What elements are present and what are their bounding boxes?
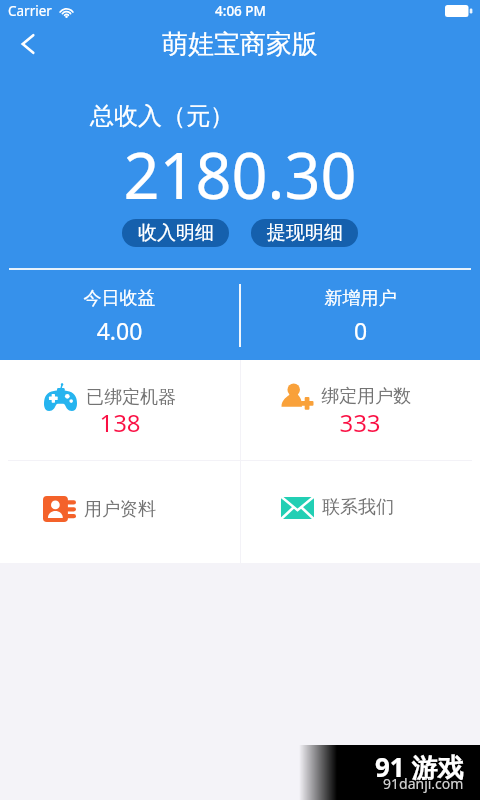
staticText: 4:06 PM — [215, 2, 266, 20]
staticText: 333 — [240, 406, 480, 439]
button[interactable]: 用户资料 — [0, 461, 240, 563]
staticText: 联系我们 — [322, 496, 394, 519]
button[interactable]: Back — [6, 22, 50, 66]
button[interactable]: 新增用户 — [241, 269, 480, 361]
staticText: 2180.30 — [0, 132, 480, 218]
staticText: 91 游戏 — [375, 749, 464, 785]
staticText: 用户资料 — [84, 498, 156, 521]
button[interactable]: 绑定用户数 — [240, 360, 480, 460]
staticText: 绑定用户数 — [321, 385, 411, 408]
staticText: 总收入（元） — [0, 101, 324, 131]
button[interactable]: 提现明细 — [251, 219, 358, 247]
staticText: 今日收益 — [0, 287, 239, 310]
staticText: Carrier — [8, 2, 52, 20]
staticText: 收入明细 — [138, 221, 214, 245]
staticText: 4.00 — [0, 315, 239, 346]
button[interactable]: 收入明细 — [122, 219, 229, 247]
staticText: 提现明细 — [267, 221, 343, 245]
staticText: 新增用户 — [241, 287, 480, 310]
button[interactable]: 联系我们 — [240, 461, 480, 563]
staticText: 0 — [241, 315, 480, 346]
staticText: 已绑定机器 — [86, 386, 176, 409]
staticText: 萌娃宝商家版 — [162, 28, 318, 61]
button[interactable]: 已绑定机器 — [0, 360, 240, 460]
staticText: 138 — [0, 406, 240, 439]
staticText: 91danji.com — [383, 774, 464, 793]
button[interactable]: 今日收益 — [0, 269, 239, 361]
